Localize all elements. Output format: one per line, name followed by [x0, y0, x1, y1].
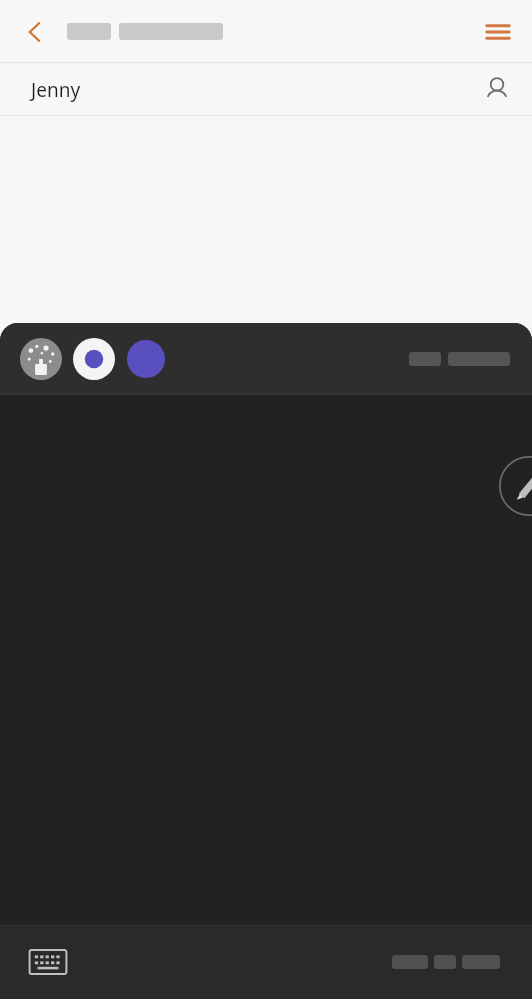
button[interactable]: Keyboard [26, 945, 70, 979]
button[interactable]: Back [7, 4, 63, 60]
button[interactable]: Jenny [0, 63, 532, 116]
button[interactable]: Brush size [73, 338, 115, 380]
button[interactable]: Effects [20, 338, 62, 380]
button[interactable]: Contacts [471, 64, 523, 116]
button[interactable]: Draw [498, 455, 532, 517]
button[interactable]: Menu [470, 4, 526, 60]
button[interactable]: Colour [127, 340, 165, 378]
staticText: Jenny [31, 77, 81, 103]
